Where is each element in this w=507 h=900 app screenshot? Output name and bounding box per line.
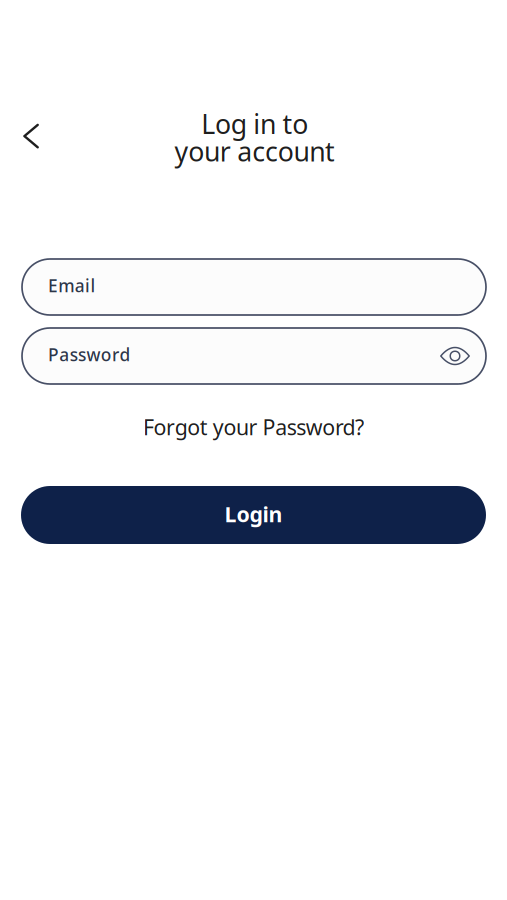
button[interactable]: Back: [8, 113, 54, 159]
staticText: Login: [224, 500, 282, 528]
staticText: Email: [48, 274, 95, 297]
staticText: Log in to your account: [174, 106, 335, 169]
staticText: Password: [48, 343, 130, 366]
button[interactable]: Login: [21, 486, 486, 544]
button[interactable]: Forgot your Password?: [1, 411, 506, 443]
staticText: Forgot your Password?: [143, 413, 364, 441]
button[interactable]: Show password: [440, 347, 470, 365]
